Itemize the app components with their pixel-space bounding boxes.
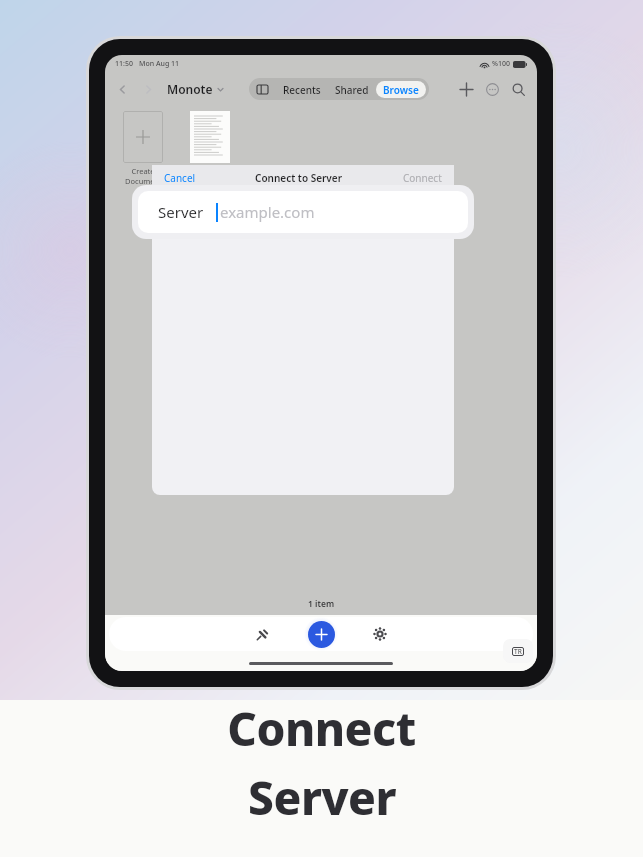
button[interactable]: Settings (365, 619, 395, 649)
button[interactable]: Server (138, 191, 468, 233)
button[interactable]: Sidebar (252, 79, 272, 99)
staticText: Connect (227, 697, 416, 760)
button[interactable]: Document preview (190, 111, 230, 163)
staticText: 11:50 (115, 59, 133, 69)
staticText: Server (158, 202, 204, 222)
button[interactable]: Add (455, 78, 477, 100)
staticText: 1 item (308, 598, 335, 610)
button[interactable]: More options (481, 78, 503, 100)
button[interactable]: Recents (276, 81, 328, 98)
button[interactable]: Cancel (162, 169, 198, 187)
staticText: Server (248, 766, 396, 829)
button[interactable]: Back (113, 80, 131, 98)
staticText: Cancel (164, 171, 196, 185)
staticText: TR (514, 647, 522, 656)
staticText: Connect to Server (255, 171, 343, 185)
staticText: %100 (492, 59, 510, 69)
button[interactable]: Monote (167, 81, 224, 97)
staticText: Monote (167, 81, 213, 97)
staticText: example.com (220, 202, 315, 222)
staticText: Connect (403, 171, 442, 185)
staticText: Document (125, 176, 162, 186)
button[interactable]: Add (308, 621, 335, 648)
staticText: Browse (383, 83, 419, 97)
button[interactable]: Keyboard language TR (503, 639, 533, 663)
button[interactable]: Search (507, 78, 529, 100)
button[interactable]: Browse (376, 81, 426, 98)
button[interactable]: Create Document (123, 111, 163, 163)
button[interactable]: Connect (401, 169, 444, 187)
staticText: Recents (283, 83, 321, 97)
staticText: Preview is 2 is (185, 166, 234, 176)
button[interactable]: Shared (328, 81, 376, 98)
staticText: Mon Aug 11 (139, 59, 180, 69)
staticText: Create (131, 166, 155, 176)
staticText: Shared (335, 83, 369, 97)
button[interactable]: Pin (247, 619, 277, 649)
